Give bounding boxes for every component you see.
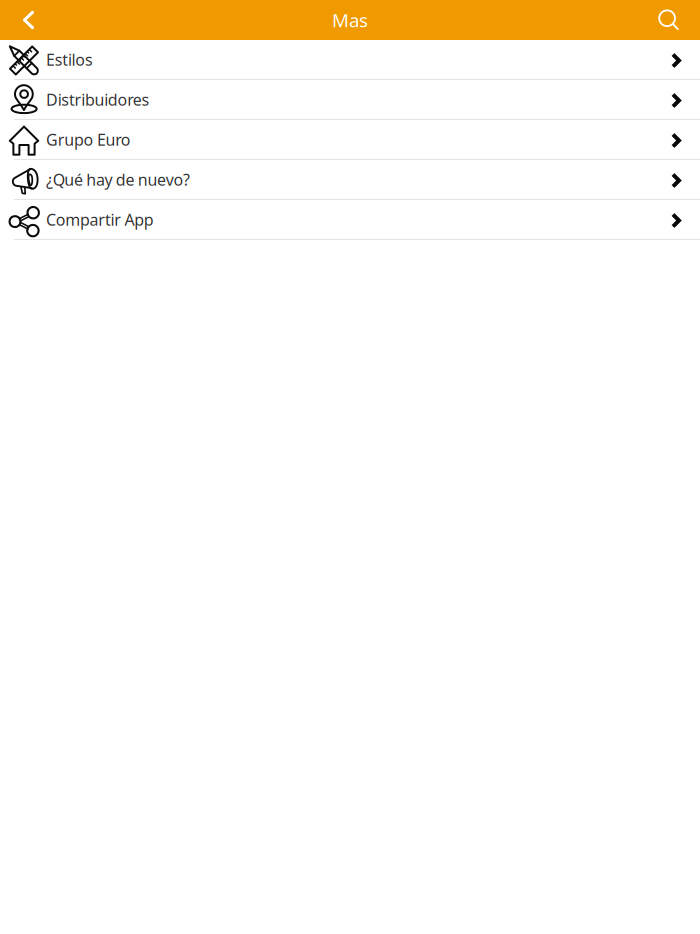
button[interactable]: Back xyxy=(0,0,57,40)
staticText: Compartir App xyxy=(46,209,154,230)
button[interactable]: Estilos xyxy=(0,40,700,80)
staticText: Estilos xyxy=(46,49,93,70)
button[interactable]: Distribuidores xyxy=(0,80,700,120)
button[interactable]: ¿Qué hay de nuevo? xyxy=(0,160,700,200)
button[interactable]: Compartir App xyxy=(0,200,700,240)
staticText: Mas xyxy=(332,8,368,32)
staticText: Distribuidores xyxy=(46,89,149,110)
button[interactable]: Grupo Euro xyxy=(0,120,700,160)
button[interactable]: Search xyxy=(637,0,700,40)
staticText: ¿Qué hay de nuevo? xyxy=(46,169,190,190)
staticText: Grupo Euro xyxy=(46,129,131,150)
